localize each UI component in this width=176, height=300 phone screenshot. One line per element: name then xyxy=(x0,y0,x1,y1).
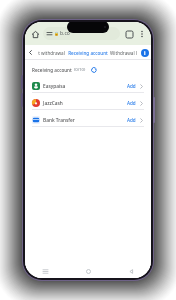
button[interactable]: Home xyxy=(29,28,41,40)
staticText: t withdrawal xyxy=(38,50,65,56)
button[interactable]: Bank Transfer xyxy=(28,113,148,127)
button[interactable]: Refresh xyxy=(89,65,98,74)
button[interactable]: Home xyxy=(82,265,94,277)
button[interactable]: Receiving account xyxy=(67,45,108,60)
staticText: Receiving account xyxy=(32,67,72,73)
staticText: b.co xyxy=(60,30,70,37)
staticText: Add xyxy=(127,83,136,89)
button[interactable]: Withdrawal l xyxy=(108,45,138,60)
staticText: Add xyxy=(127,100,136,106)
button[interactable]: More options xyxy=(136,28,147,39)
button[interactable]: Recent apps xyxy=(39,265,51,277)
button[interactable]: Back xyxy=(125,265,137,277)
staticText: 🔒 xyxy=(54,31,59,36)
staticText: Receiving account xyxy=(68,50,108,56)
staticText: JazzCash xyxy=(43,100,63,107)
staticText: Bank Transfer xyxy=(43,117,75,124)
staticText: Easypaisa xyxy=(43,83,66,90)
staticText: Add xyxy=(127,117,136,123)
button[interactable]: Back xyxy=(25,45,36,60)
button[interactable]: 🔒 xyxy=(43,27,120,40)
staticText: (0/10) xyxy=(74,67,86,73)
button[interactable]: Tabs xyxy=(123,28,135,40)
button[interactable]: Easypaisa xyxy=(28,79,148,93)
button[interactable]: Help xyxy=(138,45,151,60)
button[interactable]: JazzCash xyxy=(28,96,148,110)
button[interactable]: t withdrawal xyxy=(36,45,67,60)
staticText: i xyxy=(144,50,146,57)
staticText: Withdrawal l xyxy=(110,50,137,56)
